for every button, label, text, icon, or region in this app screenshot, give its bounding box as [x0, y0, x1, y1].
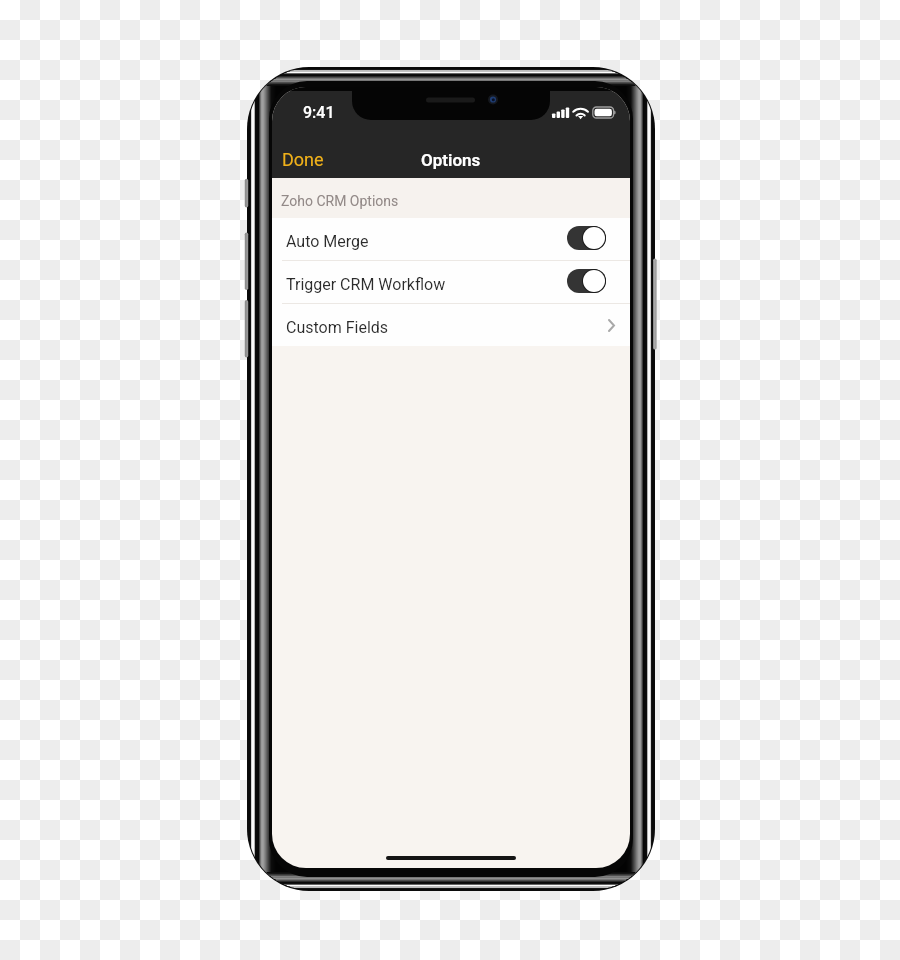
staticText: Trigger CRM Workflow [286, 275, 446, 294]
staticText: 9:41 [303, 103, 335, 122]
button[interactable]: Trigger CRM Workflow [272, 261, 630, 303]
button[interactable]: Toggle Auto Merge [567, 226, 606, 250]
staticText: Zoho CRM Options [281, 193, 399, 209]
button[interactable]: Custom Fields [272, 304, 630, 346]
staticText: Options [421, 150, 481, 170]
staticText: Custom Fields [286, 318, 389, 337]
button[interactable]: Toggle Trigger CRM Workflow [567, 269, 606, 293]
staticText: Done [282, 149, 324, 170]
button[interactable]: Auto Merge [272, 218, 630, 260]
button[interactable]: Done [275, 141, 331, 178]
staticText: Auto Merge [286, 232, 369, 251]
